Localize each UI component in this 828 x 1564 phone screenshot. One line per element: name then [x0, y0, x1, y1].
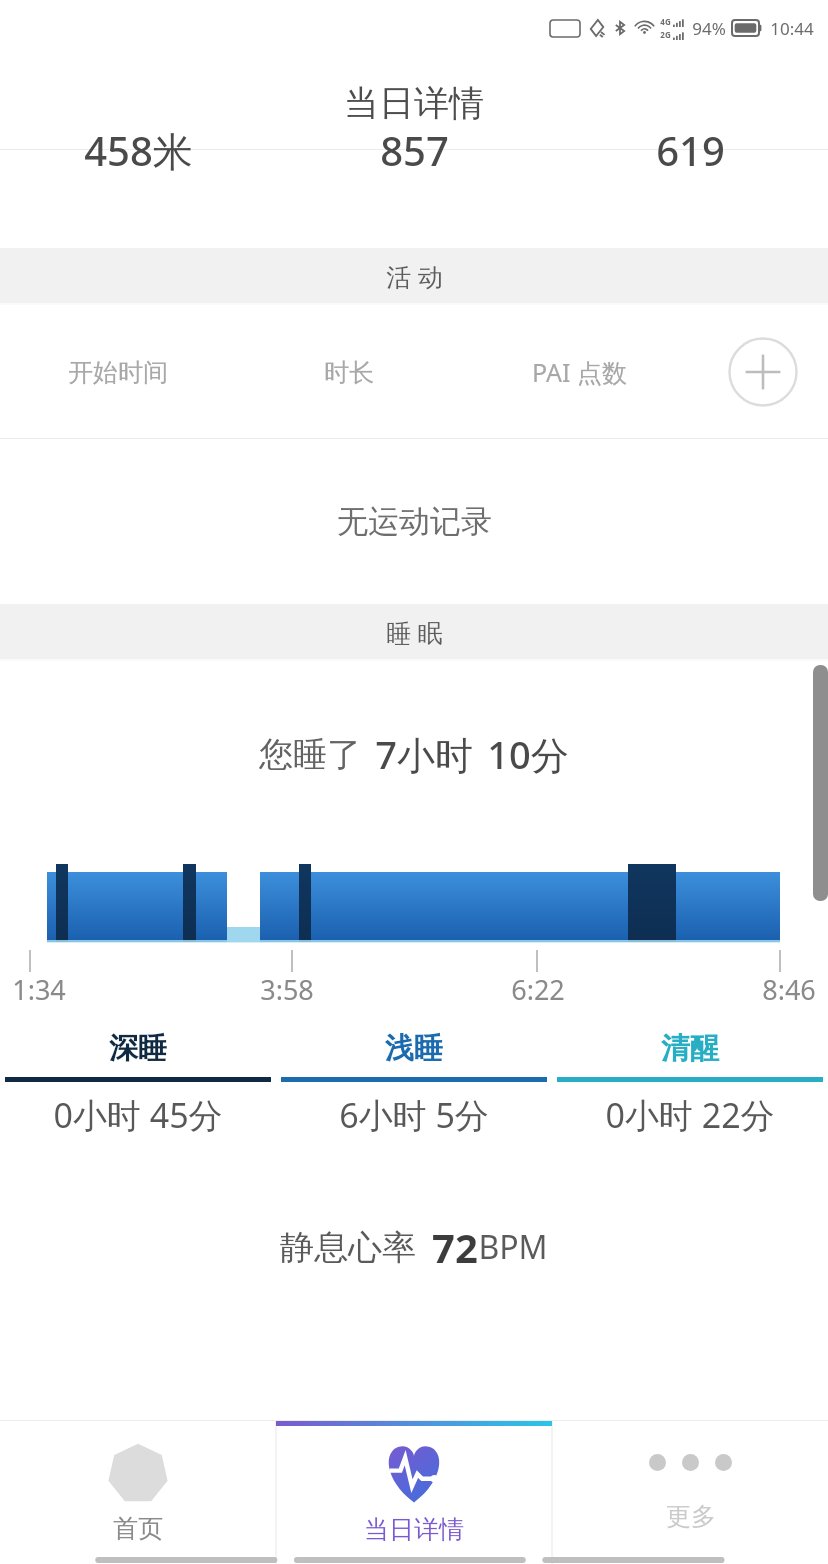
button[interactable]: 首页 [0, 1421, 276, 1564]
staticText: 无运动记录 [337, 502, 492, 541]
staticText: 8:46 [762, 971, 816, 1008]
staticText: 6:22 [511, 971, 565, 1008]
staticText: 深睡 [109, 1030, 167, 1067]
staticText: 0小时 45分 [53, 1092, 223, 1138]
button[interactable]: 添加活动 [698, 322, 828, 422]
staticText: 7小时 [375, 728, 473, 780]
staticText: 活 动 [386, 259, 443, 293]
staticText: 10分 [487, 728, 569, 780]
button[interactable]: 浅睡 [276, 1012, 552, 1187]
staticText: 3:58 [260, 971, 314, 1008]
button[interactable]: 更多 [552, 1421, 828, 1564]
button[interactable]: 深睡 [0, 1012, 276, 1187]
staticText: 619 [656, 123, 725, 175]
staticText: 首页 [113, 1513, 163, 1544]
staticText: 2G [660, 29, 671, 40]
staticText: 72 [432, 1220, 478, 1274]
staticText: 94% [692, 17, 726, 40]
staticText: BPM [478, 1225, 548, 1269]
staticText: 睡 眠 [386, 615, 443, 649]
staticText: 浅睡 [385, 1030, 443, 1067]
staticText: 清醒 [661, 1030, 719, 1067]
staticText: 10:44 [770, 17, 814, 40]
staticText: 0小时 22分 [605, 1092, 775, 1138]
staticText: 1:34 [12, 971, 66, 1008]
staticText: 458米 [84, 123, 193, 175]
staticText: 当日详情 [344, 81, 484, 125]
staticText: 静息心率 [280, 1226, 416, 1269]
staticText: 开始时间 [68, 357, 168, 388]
button[interactable]: 清醒 [552, 1012, 828, 1187]
staticText: 当日详情 [364, 1514, 464, 1545]
staticText: 时长 [324, 357, 374, 388]
staticText: 6小时 5分 [339, 1092, 489, 1138]
staticText: 857 [380, 123, 449, 175]
staticText: PAI 点数 [532, 355, 627, 389]
button[interactable]: 当日详情 [276, 1421, 552, 1564]
staticText: 更多 [666, 1501, 716, 1532]
staticText: 您睡了 [259, 733, 361, 776]
staticText: 4G [660, 16, 671, 27]
